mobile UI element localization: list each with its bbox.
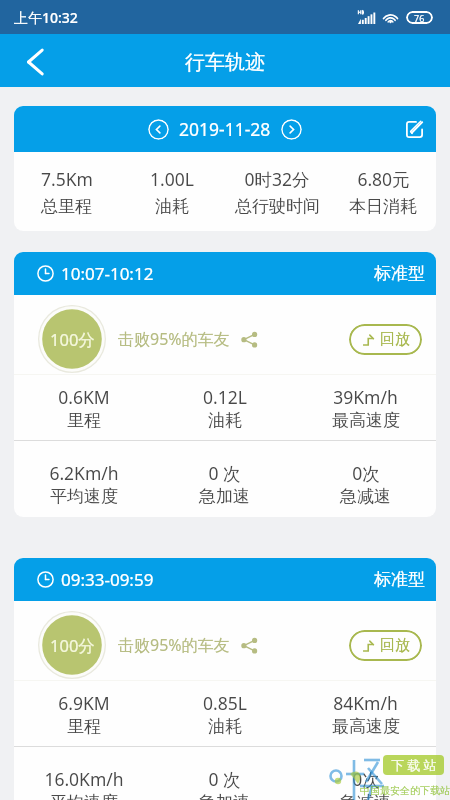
staticText: 平均速度	[50, 486, 118, 507]
staticText: 回放	[380, 636, 410, 655]
staticText: 急减速	[340, 486, 391, 507]
staticText: 急加速	[199, 792, 250, 800]
staticText: 标准型	[374, 569, 425, 590]
staticText: 100分	[50, 634, 95, 657]
staticText: 100分	[50, 328, 95, 351]
staticText: 总行驶时间	[235, 196, 320, 217]
staticText: 1.00L	[150, 167, 194, 191]
button[interactable]: Share	[241, 331, 258, 348]
staticText: 0 次	[208, 461, 241, 485]
staticText: 急减速	[340, 792, 391, 800]
staticText: 击败95%的车友	[118, 634, 230, 656]
staticText: 行车轨迹	[185, 50, 265, 75]
staticText: 最高速度	[332, 410, 400, 431]
button[interactable]: 回放	[349, 324, 422, 355]
staticText: 76	[414, 12, 425, 24]
staticText: 回放	[380, 330, 410, 349]
staticText: 6.9KM	[58, 691, 110, 715]
staticText: 总里程	[41, 196, 92, 217]
staticText: 本日消耗	[349, 196, 417, 217]
staticText: 急加速	[199, 486, 250, 507]
button[interactable]: Next day	[281, 119, 302, 140]
staticText: 39Km/h	[333, 385, 398, 409]
staticText: 0次	[352, 461, 380, 485]
staticText: 下 载 站	[391, 756, 437, 774]
staticText: 0.85L	[203, 691, 247, 715]
staticText: 84Km/h	[333, 691, 398, 715]
staticText: 平均速度	[50, 792, 118, 800]
button[interactable]: Edit	[392, 106, 436, 152]
staticText: 里程	[67, 410, 101, 431]
staticText: 中国最安全的下载站	[360, 784, 450, 797]
staticText: 6.80元	[357, 167, 410, 191]
staticText: 里程	[67, 716, 101, 737]
staticText: 10:07-10:12	[61, 262, 154, 285]
staticText: 0.12L	[203, 385, 247, 409]
button[interactable]: Previous day	[148, 119, 169, 140]
staticText: 上午10:32	[14, 8, 78, 27]
staticText: 0时32分	[244, 167, 310, 191]
staticText: 0.6KM	[58, 385, 110, 409]
staticText: 击败95%的车友	[118, 328, 230, 350]
staticText: 6.2Km/h	[49, 461, 119, 485]
staticText: 7.5Km	[41, 167, 93, 191]
staticText: 最高速度	[332, 716, 400, 737]
staticText: 油耗	[208, 410, 242, 431]
staticText: 标准型	[374, 263, 425, 284]
button[interactable]: Back	[0, 34, 69, 87]
staticText: 2019-11-28	[179, 117, 271, 141]
staticText: 16.0Km/h	[44, 767, 124, 791]
staticText: 油耗	[155, 196, 189, 217]
button[interactable]: 回放	[349, 630, 422, 661]
staticText: 0 次	[208, 767, 241, 791]
staticText: 0次	[352, 767, 380, 791]
staticText: 09:33-09:59	[61, 568, 154, 591]
button[interactable]: Share	[241, 637, 258, 654]
staticText: 油耗	[208, 716, 242, 737]
